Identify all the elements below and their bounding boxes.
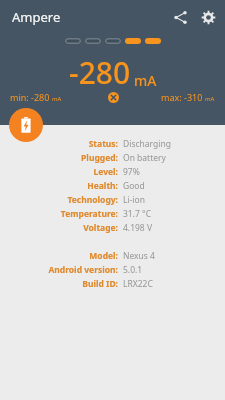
button[interactable]: Share (165, 2, 195, 32)
button[interactable]: Technology: (0, 193, 225, 207)
button[interactable]: Reset (106, 90, 120, 104)
staticText: max: -310 (161, 91, 203, 103)
staticText: Voltage: (0, 222, 118, 234)
staticText: Status: (0, 138, 118, 150)
button[interactable]: Level: (0, 165, 225, 179)
staticText: -280 (69, 52, 131, 93)
button[interactable]: Battery charging (9, 108, 43, 142)
button[interactable]: Android version: (0, 263, 225, 277)
button[interactable]: Status: (0, 137, 225, 151)
staticText: Ampere (12, 8, 61, 26)
staticText: Build ID: (0, 278, 118, 290)
staticText: LRX22C (123, 278, 153, 290)
button[interactable]: Model: (0, 249, 225, 263)
staticText: On battery (123, 152, 166, 164)
staticText: Health: (0, 180, 118, 192)
staticText: Plugged: (0, 152, 118, 164)
staticText: Level: (0, 166, 118, 178)
button[interactable]: Health: (0, 179, 225, 193)
staticText: 4.198 V (123, 222, 153, 234)
staticText: mA (134, 71, 157, 90)
button[interactable]: Temperature: (0, 207, 225, 221)
staticText: Li-ion (123, 194, 145, 206)
button[interactable]: Build ID: (0, 277, 225, 291)
staticText: Temperature: (0, 208, 118, 220)
staticText: min: -280 (10, 91, 50, 103)
staticText: Discharging (123, 138, 171, 150)
button[interactable]: Plugged: (0, 151, 225, 165)
staticText: mA (52, 95, 62, 103)
button[interactable]: Settings (195, 2, 221, 32)
staticText: mA (205, 95, 215, 103)
staticText: Good (123, 180, 145, 192)
staticText: 5.0.1 (123, 264, 143, 276)
staticText: Technology: (0, 194, 118, 206)
staticText: 31.7 °C (123, 208, 152, 220)
staticText: Android version: (0, 264, 118, 276)
staticText: Model: (0, 250, 118, 262)
staticText: Nexus 4 (123, 250, 155, 262)
button[interactable]: Voltage: (0, 221, 225, 235)
staticText: 97% (123, 166, 140, 178)
